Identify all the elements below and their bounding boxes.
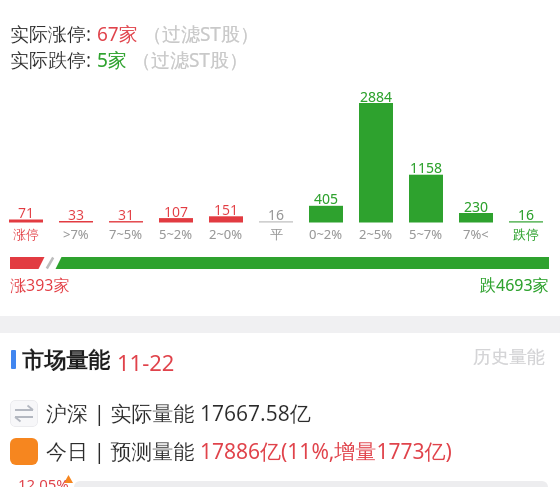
staticText: 107 (164, 202, 189, 220)
staticText: 31 (118, 205, 135, 223)
staticText: 12.05% (18, 474, 69, 487)
staticText: >7% (63, 225, 89, 243)
staticText: 33 (68, 205, 85, 223)
staticText: 151 (214, 200, 239, 218)
staticText: 0~2% (309, 225, 343, 243)
staticText: 今日 | 预测量能 (46, 437, 200, 466)
staticText: 230 (464, 197, 489, 215)
staticText: 5~2% (159, 225, 193, 243)
staticText: 市场量能 (22, 347, 110, 371)
staticText: 16 (518, 205, 535, 223)
staticText: 2~5% (359, 225, 393, 243)
staticText: （过滤ST股） (138, 21, 259, 45)
staticText: 5家 (97, 47, 127, 71)
button[interactable]: 12.05% (0, 470, 560, 487)
staticText: 实际涨停: (10, 21, 97, 45)
staticText: 11-22 (117, 347, 175, 371)
button[interactable]: 沪深 | 实际量能 17667.58亿 (0, 396, 560, 430)
staticText: 实际跌停: (10, 47, 97, 71)
staticText: 7%< (463, 225, 489, 243)
staticText: 5~7% (409, 225, 443, 243)
staticText: （过滤ST股） (127, 47, 248, 71)
staticText: 7~5% (109, 225, 143, 243)
staticText: 平 (270, 226, 283, 242)
staticText: 16 (268, 205, 285, 223)
staticText: 涨393家 (10, 274, 70, 296)
staticText: 跌停 (513, 226, 539, 242)
staticText: 405 (314, 189, 339, 207)
staticText: 沪深 | 实际量能 17667.58亿 (46, 399, 311, 428)
button[interactable]: 历史量能 (473, 346, 545, 369)
staticText: 17886亿(11%,增量1773亿) (200, 437, 452, 466)
staticText: 跌4693家 (480, 274, 549, 296)
staticText: 1158 (410, 158, 443, 176)
staticText: 67家 (97, 21, 138, 45)
staticText: 71 (18, 203, 35, 221)
button[interactable]: 今日 | 预测量能 (0, 434, 560, 468)
staticText: 涨停 (13, 226, 39, 242)
staticText: 历史量能 (473, 346, 545, 369)
staticText: 2884 (360, 87, 393, 105)
staticText: 2~0% (209, 225, 243, 243)
